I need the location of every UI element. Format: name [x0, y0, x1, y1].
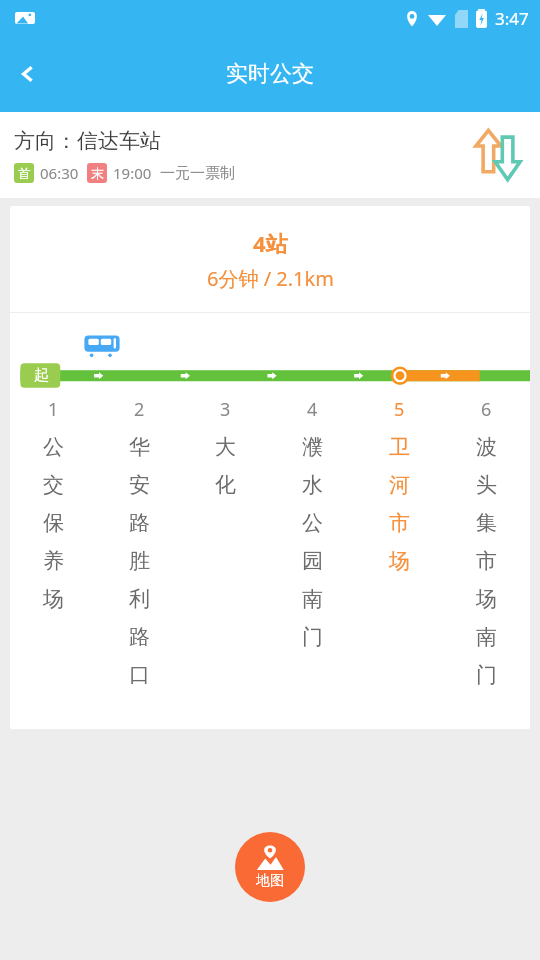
staticText: 首 [18, 165, 31, 181]
button[interactable]: 2 [96, 397, 182, 689]
button[interactable]: 1 [10, 397, 96, 613]
staticText: 濮 水 公 园 南 门 [302, 434, 323, 651]
staticText: 公 交 保 养 场 [43, 434, 64, 613]
staticText: 一元一票制 [160, 164, 235, 183]
staticText: 4 [307, 397, 318, 422]
staticText: 末 [91, 165, 104, 181]
button[interactable]: 6 [443, 397, 530, 689]
staticText: 3 [220, 397, 231, 422]
button[interactable]: 4站 [10, 206, 530, 312]
button[interactable]: 地图 [235, 832, 305, 902]
button[interactable]: 5 [356, 397, 443, 575]
staticText: 2 [134, 397, 145, 422]
staticText: 卫 河 市 场 [389, 434, 410, 575]
button[interactable]: 返回 [0, 46, 56, 102]
staticText: 4站 [253, 228, 288, 258]
staticText: 1 [48, 397, 59, 422]
staticText: 大 化 [215, 434, 236, 499]
staticText: 3:47 [495, 7, 529, 30]
button[interactable]: 3 [182, 397, 269, 499]
staticText: 06:30 [40, 163, 79, 183]
staticText: 6 [481, 397, 492, 422]
staticText: 6分钟 / 2.1km [207, 265, 334, 292]
button[interactable]: 换向 [470, 127, 526, 183]
staticText: 华 安 路 胜 利 路 口 [129, 434, 150, 689]
staticText: 地图 [256, 872, 284, 890]
staticText: 实时公交 [226, 60, 314, 88]
staticText: 起 [34, 366, 49, 385]
button[interactable]: 4 [269, 397, 356, 651]
staticText: 5 [394, 397, 405, 422]
staticText: 波 头 集 市 场 南 门 [476, 434, 497, 689]
staticText: 19:00 [113, 163, 152, 183]
staticText: 方向：信达车站 [14, 128, 161, 154]
